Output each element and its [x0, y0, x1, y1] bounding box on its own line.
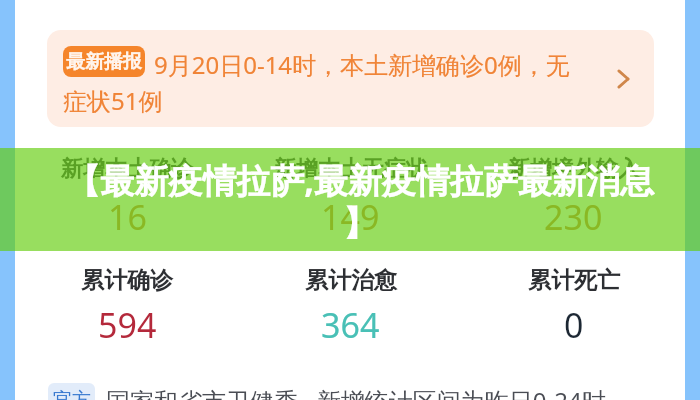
staticText: 新增本土无症状: [274, 155, 428, 183]
staticText: 0: [564, 302, 584, 348]
button[interactable]: 查看最新播报详情: [606, 62, 640, 96]
staticText: 累计治愈: [305, 266, 397, 295]
staticText: 364: [321, 302, 380, 348]
staticText: 新增本土确诊: [61, 155, 193, 183]
staticText: 【最新疫情拉萨,最新疫情拉萨最新消息 】: [10, 157, 700, 245]
staticText: 149: [321, 194, 380, 240]
staticText: 9月20日0-14时，本土新增确诊0例，无: [154, 48, 570, 81]
staticText: 累计死亡: [528, 266, 620, 295]
staticText: 官方: [53, 388, 91, 400]
staticText: 230: [544, 194, 603, 240]
staticText: 症状51例: [63, 84, 163, 117]
staticText: 新增境外输入: [508, 155, 640, 183]
staticText: 16: [108, 194, 147, 240]
button[interactable]: 最新播报: [47, 30, 654, 127]
staticText: 594: [98, 302, 157, 348]
staticText: 国家和省市卫健委 新增统计区间为昨日0-24时: [106, 384, 606, 400]
staticText: 最新播报: [66, 50, 142, 74]
staticText: 累计确诊: [81, 266, 173, 295]
